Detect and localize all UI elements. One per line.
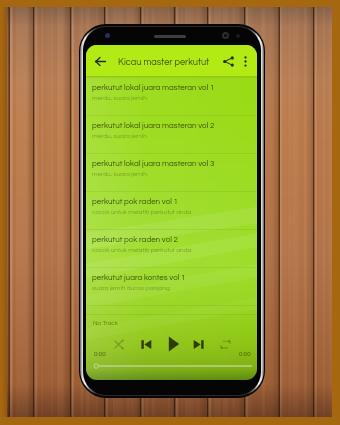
staticText: perkutut lokal juara masteran vol 3 (92, 159, 215, 167)
staticText: merdu, suara jernih (92, 95, 147, 102)
staticText: merdu, suara jernih (92, 171, 147, 178)
button[interactable]: Previous (141, 339, 152, 350)
button[interactable]: Back (90, 51, 110, 71)
staticText: 0:00 (94, 351, 106, 357)
button[interactable]: perkutut lokal juara masteran vol 3 (86, 154, 257, 192)
staticText: perkutut pok raden vol 2 (92, 235, 178, 243)
button[interactable]: Repeat (220, 339, 231, 350)
staticText: 0:00 (239, 351, 251, 357)
staticText: perkutut lokal juara masteran vol 1 (92, 83, 215, 91)
button[interactable]: perkutut lokal juara masteran vol 1 (86, 78, 257, 116)
button[interactable]: perkutut lokal juara masteran vol 2 (86, 116, 257, 154)
button[interactable]: perkutut juara kontes vol 1 (86, 268, 257, 306)
button[interactable]: More options (237, 53, 253, 69)
button[interactable]: Share (219, 52, 237, 70)
staticText: Kicau master perkutut (118, 57, 219, 66)
staticText: cocok untuk melatih perkutut anda (92, 247, 192, 254)
staticText: No Track (93, 320, 118, 326)
staticText: perkutut pok raden vol 1 (92, 197, 178, 205)
button[interactable]: perkutut pok raden vol 1 (86, 192, 257, 230)
staticText: cocok untuk melatih perkutut anda (92, 209, 192, 216)
staticText: merdu, suara jernih (92, 133, 147, 140)
staticText: suara jernih durasi panjang (92, 285, 170, 292)
staticText: perkutut juara kontes vol 1 (92, 273, 186, 281)
button[interactable]: Shuffle (114, 339, 125, 350)
button[interactable]: perkutut pok raden vol 2 (86, 230, 257, 268)
button[interactable]: Play (168, 336, 180, 352)
staticText: perkutut lokal juara masteran vol 2 (92, 121, 215, 129)
button[interactable]: Next (193, 339, 204, 350)
